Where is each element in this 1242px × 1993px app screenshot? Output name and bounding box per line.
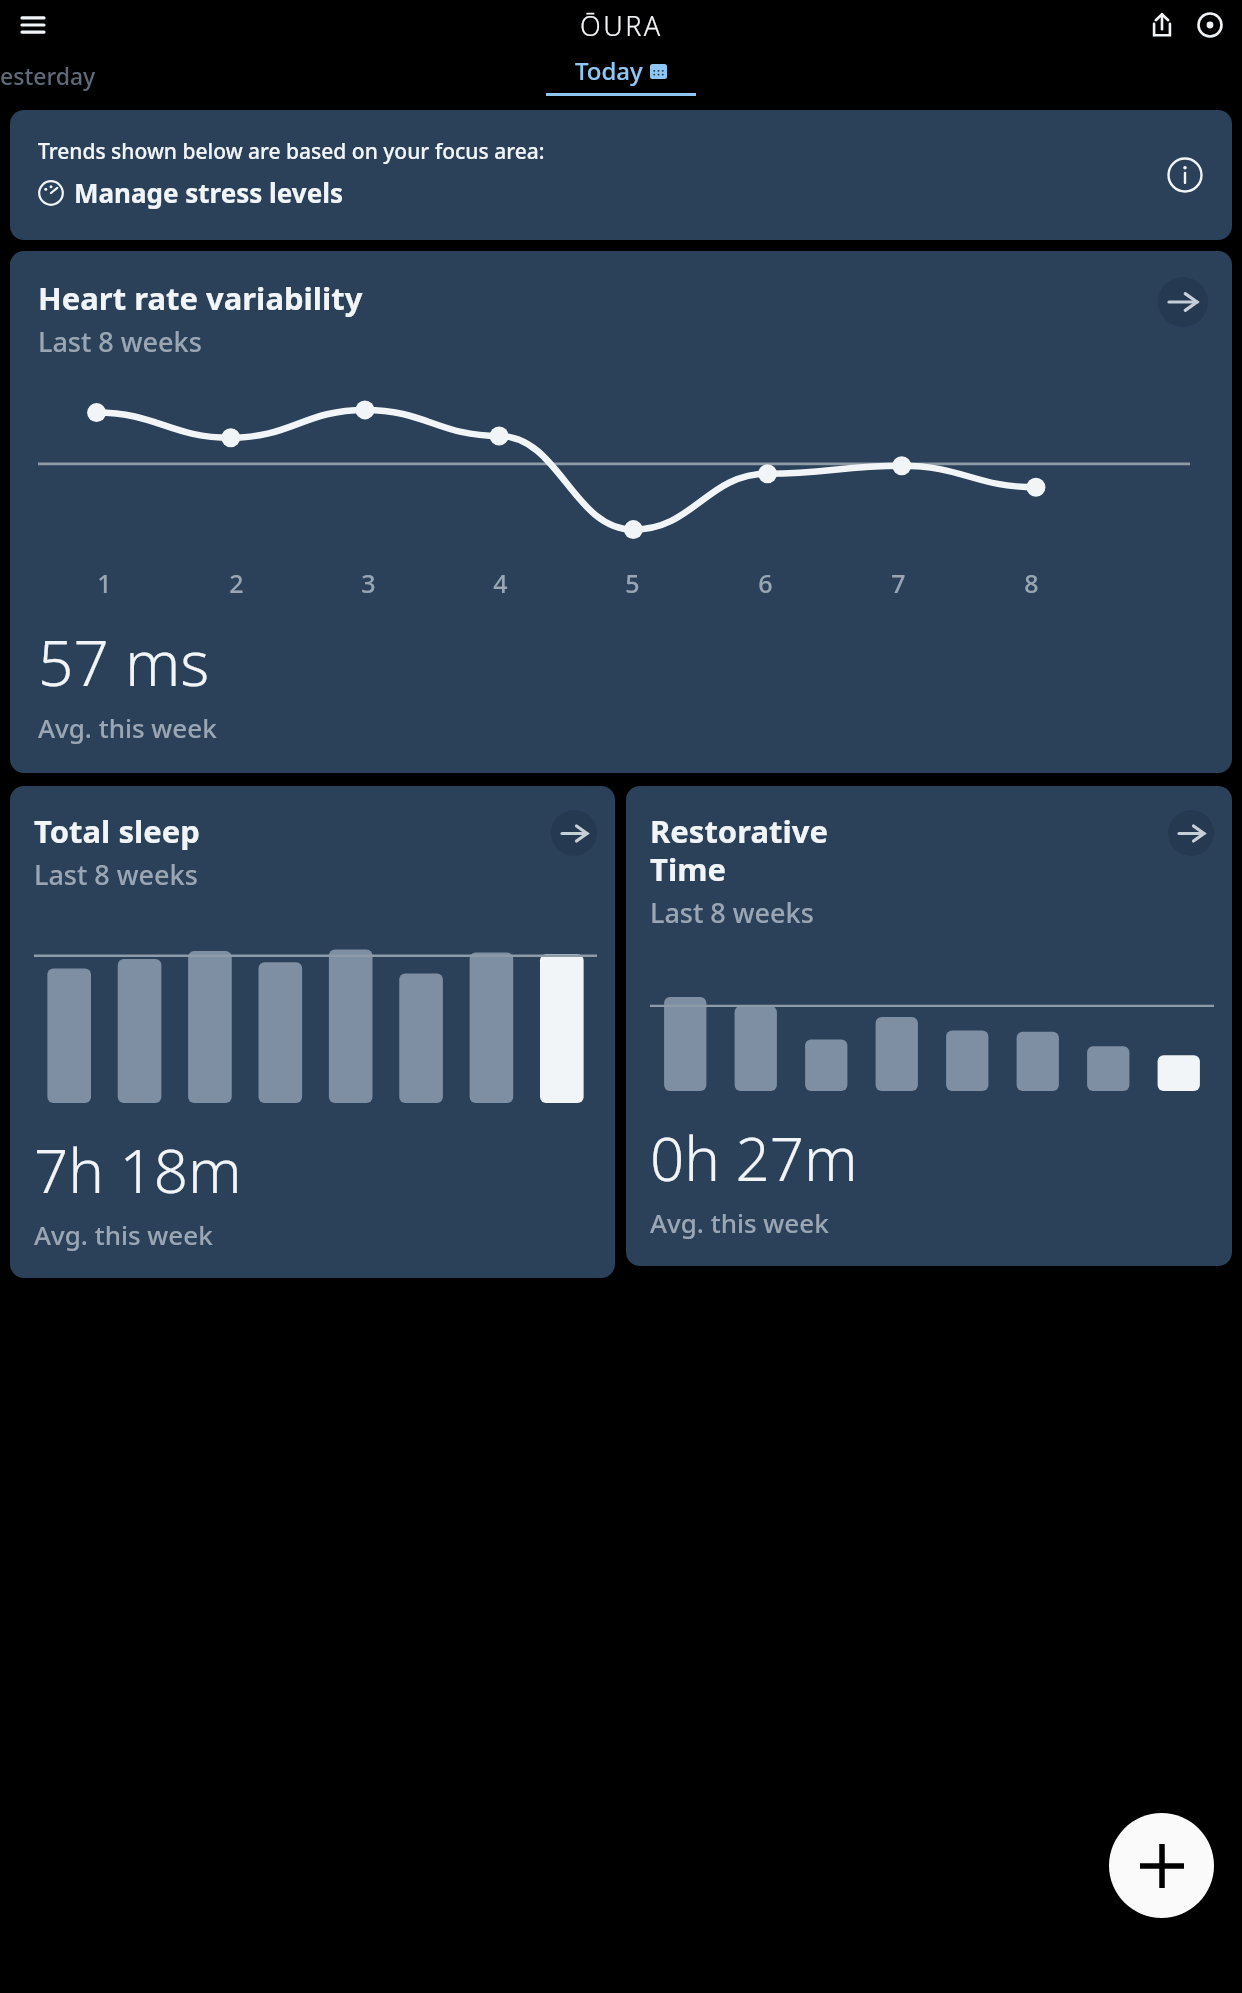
staticText: 0h 27m: [650, 1117, 858, 1199]
staticText: Manage stress levels: [74, 175, 344, 210]
staticText: 7: [891, 566, 906, 600]
staticText: Total sleep: [34, 810, 200, 852]
staticText: Heart rate variability: [38, 277, 363, 319]
button[interactable]: Share: [1142, 5, 1182, 45]
staticText: Today: [575, 54, 643, 87]
button[interactable]: Menu: [12, 4, 54, 46]
staticText: 1: [97, 566, 112, 600]
button[interactable]: Heart rate variability: [10, 251, 1232, 773]
staticText: ŌURA: [580, 7, 663, 44]
button[interactable]: Restorative Time: [626, 786, 1232, 1266]
staticText: Last 8 weeks: [34, 856, 198, 893]
button[interactable]: esterday: [0, 60, 96, 91]
button[interactable]: Open details: [1168, 810, 1214, 856]
staticText: Avg. this week: [650, 1205, 829, 1240]
staticText: 4: [493, 566, 508, 600]
staticText: 7h 18m: [34, 1129, 242, 1211]
staticText: 3: [361, 566, 376, 600]
button[interactable]: Info: [1164, 154, 1206, 196]
staticText: Restorative Time: [650, 810, 828, 890]
button[interactable]: Add: [1109, 1813, 1214, 1918]
staticText: Avg. this week: [38, 710, 217, 745]
staticText: Avg. this week: [34, 1217, 213, 1252]
staticText: Last 8 weeks: [38, 323, 202, 360]
button[interactable]: Open details: [551, 810, 597, 856]
staticText: 5: [625, 566, 640, 600]
staticText: 6: [758, 566, 773, 600]
staticText: 2: [229, 566, 244, 600]
staticText: Trends shown below are based on your foc…: [38, 137, 545, 166]
button[interactable]: Open details: [1158, 277, 1208, 327]
button[interactable]: Total sleep: [10, 786, 615, 1278]
staticText: Last 8 weeks: [650, 894, 814, 931]
button[interactable]: Today: [546, 54, 696, 96]
staticText: 57 ms: [38, 620, 210, 704]
button[interactable]: Ring status: [1190, 5, 1230, 45]
button[interactable]: Trends shown below are based on your foc…: [10, 110, 1232, 240]
staticText: 8: [1024, 566, 1039, 600]
